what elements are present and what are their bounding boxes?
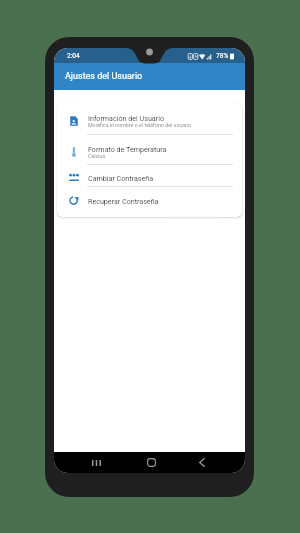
button[interactable]: Información del Usuario	[57, 103, 242, 135]
staticText: 2:04	[67, 52, 80, 60]
button[interactable]: Cambiar Contraseña	[57, 165, 242, 187]
staticText: Información del Usuario	[88, 114, 164, 122]
button[interactable]: Formato de Temperatura	[57, 135, 242, 165]
staticText: Formato de Temperatura	[88, 145, 167, 153]
button[interactable]: Home	[134, 452, 168, 473]
button[interactable]: Recent apps	[79, 452, 113, 473]
staticText: 78%	[216, 52, 229, 60]
button[interactable]: Recuperar Contraseña	[57, 187, 242, 212]
button[interactable]: Back	[185, 452, 219, 473]
staticText: Celsius	[88, 153, 106, 159]
staticText: Ajustes del Usuario	[65, 71, 143, 82]
staticText: Modifica el nombre o el teléfono del usu…	[88, 122, 192, 128]
staticText: Cambiar Contraseña	[88, 174, 154, 182]
staticText: Recuperar Contraseña	[88, 197, 159, 205]
